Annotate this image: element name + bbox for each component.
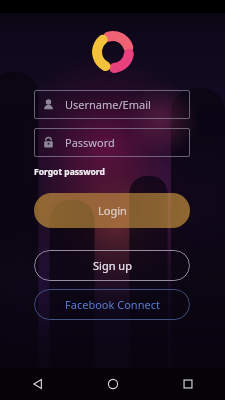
staticText: Forgot password (34, 166, 105, 178)
button[interactable]: Back (0, 368, 75, 400)
button[interactable]: Password (34, 128, 190, 157)
button[interactable]: Forgot password (31, 164, 108, 180)
button[interactable]: Username/Email (34, 90, 190, 119)
staticText: Password (65, 135, 115, 150)
staticText: Sign up (93, 258, 132, 273)
button[interactable]: Login (34, 193, 190, 228)
button[interactable]: Sign up (34, 250, 190, 281)
staticText: Facebook Connect (65, 297, 160, 312)
button[interactable]: Facebook Connect (34, 289, 190, 320)
button[interactable]: Recent apps (150, 368, 225, 400)
staticText: Login (98, 203, 127, 218)
staticText: Username/Email (65, 97, 151, 112)
button[interactable]: Home (75, 368, 150, 400)
